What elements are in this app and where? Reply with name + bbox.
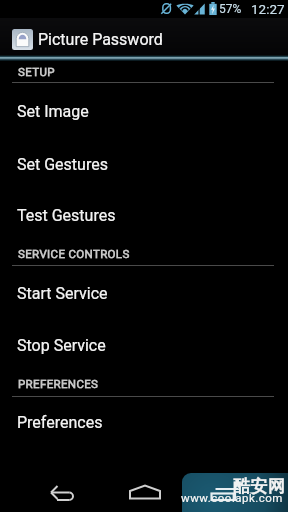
staticText: Start Service — [17, 284, 108, 303]
button[interactable]: Home — [127, 477, 163, 512]
staticText: SERVICE CONTROLS — [18, 247, 130, 260]
button[interactable]: Stop Service — [0, 322, 288, 368]
staticText: Set Image — [17, 102, 89, 121]
staticText: SETUP — [18, 65, 55, 78]
button[interactable]: Recent apps — [210, 477, 246, 512]
staticText: Preferences — [17, 413, 103, 432]
button[interactable]: Preferences — [0, 399, 288, 445]
button[interactable]: Start Service — [0, 270, 288, 316]
staticText: 57% — [219, 2, 242, 16]
staticText: Test Gestures — [17, 206, 116, 225]
staticText: 12:27 — [251, 1, 285, 17]
button[interactable]: Picture Password — [0, 18, 177, 61]
button[interactable]: Set Image — [0, 88, 288, 134]
button[interactable]: Test Gestures — [0, 192, 288, 238]
staticText: Set Gestures — [17, 155, 108, 174]
button[interactable]: Back — [44, 477, 80, 512]
button[interactable]: Set Gestures — [0, 141, 288, 187]
staticText: Stop Service — [17, 336, 106, 355]
staticText: www.coolapk.com — [181, 491, 283, 504]
staticText: PREFERENCES — [18, 377, 99, 390]
staticText: 酷安网 — [233, 476, 286, 497]
staticText: Picture Password — [38, 30, 163, 49]
